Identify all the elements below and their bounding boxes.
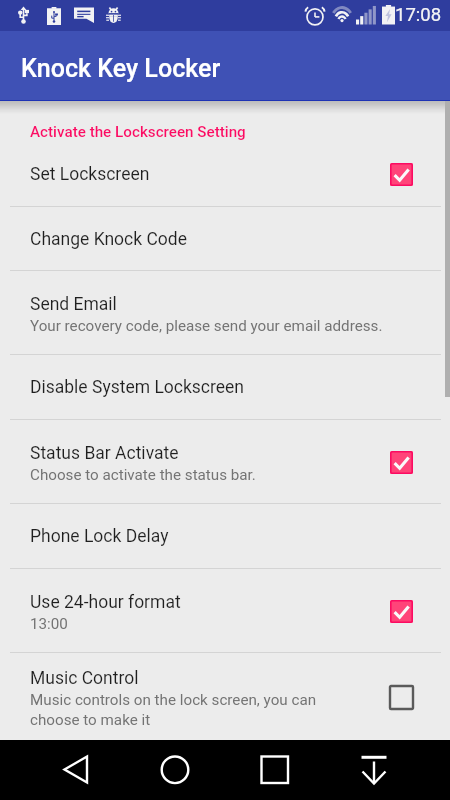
staticText: Status Bar Activate xyxy=(30,443,179,464)
button[interactable]: Send Email xyxy=(0,271,450,354)
button[interactable]: Toggle xyxy=(382,678,420,716)
button[interactable]: Set Lockscreen xyxy=(0,142,450,206)
staticText: Choose to activate the status bar. xyxy=(30,466,256,484)
button[interactable]: Music Control xyxy=(0,653,450,740)
staticText: Set Lockscreen xyxy=(30,164,150,185)
staticText: Your recovery code, please send your ema… xyxy=(30,317,383,335)
button[interactable]: Change Knock Code xyxy=(0,207,450,270)
button[interactable]: Home xyxy=(112,740,212,800)
button[interactable]: Use 24-hour format xyxy=(0,569,450,652)
button[interactable]: Toggle xyxy=(382,443,420,481)
staticText: 13:00 xyxy=(30,615,68,633)
staticText: Music Control xyxy=(30,668,139,689)
staticText: Music controls on the lock screen, you c… xyxy=(30,691,317,729)
staticText: Knock Key Locker xyxy=(21,54,221,83)
staticText: Send Email xyxy=(30,294,117,315)
button[interactable]: Toggle xyxy=(382,155,420,193)
staticText: Use 24-hour format xyxy=(30,592,181,613)
staticText: Change Knock Code xyxy=(30,229,187,250)
button[interactable]: Back xyxy=(0,740,112,800)
button[interactable]: Status Bar Activate xyxy=(0,420,450,503)
staticText: Disable System Lockscreen xyxy=(30,377,245,398)
button[interactable]: Phone Lock Delay xyxy=(0,504,450,568)
button[interactable]: Disable System Lockscreen xyxy=(0,355,450,419)
button[interactable]: Hide keyboard xyxy=(312,740,412,800)
staticText: 17:08 xyxy=(395,4,442,26)
button[interactable]: Toggle xyxy=(382,592,420,630)
staticText: Activate the Lockscreen Setting xyxy=(30,123,246,141)
staticText: Phone Lock Delay xyxy=(30,526,169,547)
button[interactable]: Recents xyxy=(212,740,312,800)
